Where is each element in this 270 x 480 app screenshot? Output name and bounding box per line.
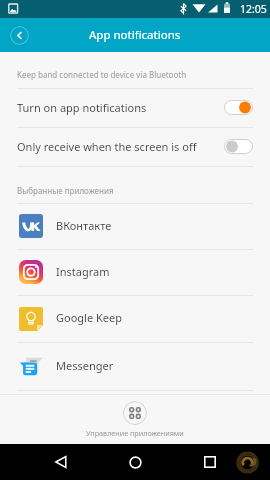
button[interactable]: Only receive when the screen is off bbox=[0, 128, 270, 166]
button[interactable]: ВКонтакте bbox=[0, 203, 270, 249]
button[interactable]: Home bbox=[120, 447, 150, 477]
button[interactable]: Manage applications bbox=[123, 401, 147, 425]
button[interactable]: Google Keep bbox=[0, 295, 270, 342]
staticText: Only receive when the screen is off bbox=[17, 139, 224, 154]
button[interactable]: Instagram bbox=[0, 249, 270, 295]
staticText: 12:05 bbox=[240, 2, 267, 16]
button[interactable]: Turn on app notifications bbox=[0, 89, 270, 128]
staticText: Выбранные приложения bbox=[17, 185, 114, 196]
staticText: Google Keep bbox=[56, 310, 122, 325]
staticText: Keep band connected to device via Blueto… bbox=[17, 69, 187, 80]
staticText: ВКонтакте bbox=[56, 218, 112, 233]
staticText: Turn on app notifications bbox=[17, 100, 224, 115]
button[interactable]: Back bbox=[10, 26, 29, 45]
button[interactable]: Back bbox=[46, 447, 76, 477]
button[interactable]: Recent apps bbox=[195, 447, 225, 477]
staticText: Instagram bbox=[56, 264, 110, 279]
staticText: Messenger bbox=[56, 358, 114, 373]
button[interactable]: Messenger bbox=[0, 342, 270, 390]
staticText: App notifications bbox=[89, 27, 181, 43]
staticText: Управление приложениями bbox=[86, 428, 184, 438]
